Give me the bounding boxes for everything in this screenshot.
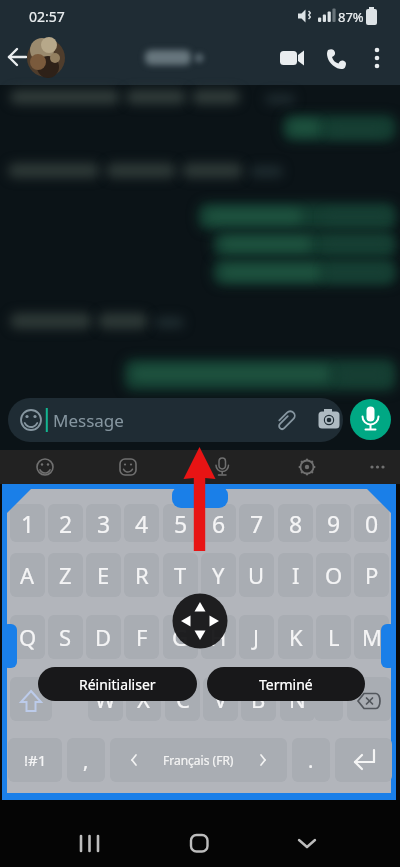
staticText: J [253, 622, 260, 652]
staticText: S [59, 622, 72, 652]
button[interactable]: I [278, 553, 313, 597]
staticText: D [95, 622, 112, 652]
staticText: . [308, 747, 314, 774]
staticText: W [95, 684, 116, 714]
button[interactable]: Q [10, 615, 45, 659]
button[interactable]: K [278, 615, 313, 659]
staticText: G [172, 622, 189, 652]
button[interactable]: 4 [124, 504, 159, 542]
button[interactable]: P [354, 553, 389, 597]
button[interactable]: X [126, 677, 161, 721]
button[interactable] [335, 738, 392, 782]
staticText: , [83, 747, 89, 774]
button[interactable]: S [48, 615, 83, 659]
staticText: 02:57 [29, 7, 65, 26]
staticText: 0 [365, 508, 379, 539]
staticText: R [135, 560, 149, 590]
staticText: 5 [174, 508, 188, 539]
staticText: H [210, 622, 227, 652]
button[interactable] [350, 399, 391, 440]
button[interactable]: R [124, 553, 159, 597]
staticText: 3 [97, 508, 111, 539]
staticText: E [97, 560, 110, 590]
button[interactable] [10, 677, 52, 721]
button[interactable]: Y [201, 553, 236, 597]
staticText: Terminé [259, 675, 313, 694]
button[interactable]: 6 [201, 504, 236, 542]
button[interactable]: M [354, 615, 389, 659]
button[interactable]: 5 [163, 504, 198, 542]
staticText: X [137, 684, 150, 714]
staticText: B [251, 684, 266, 714]
button[interactable] [314, 677, 343, 721]
button[interactable] [0, 800, 134, 867]
button[interactable]: F [124, 615, 159, 659]
button[interactable]: A [10, 553, 45, 597]
staticText: F [136, 622, 148, 652]
button[interactable]: 7 [239, 504, 274, 542]
staticText: 2 [59, 508, 73, 539]
button[interactable]: 2 [48, 504, 83, 542]
staticText: P [365, 560, 379, 590]
button[interactable]: U [239, 553, 274, 597]
button[interactable]: 0 [354, 504, 389, 542]
button[interactable]: H [201, 615, 236, 659]
button[interactable] [347, 677, 391, 721]
button[interactable] [110, 738, 287, 782]
button[interactable]: 8 [278, 504, 313, 542]
button[interactable]: D [86, 615, 121, 659]
button[interactable] [134, 800, 267, 867]
button[interactable] [240, 450, 320, 484]
button[interactable]: V [203, 677, 238, 721]
staticText: O [325, 560, 343, 590]
button[interactable] [160, 450, 240, 484]
button[interactable]: B [241, 677, 276, 721]
staticText: Français (FR) [163, 752, 234, 768]
staticText: N [289, 684, 306, 714]
staticText: I [292, 560, 300, 590]
button[interactable]: , [67, 738, 105, 782]
button[interactable]: Message [8, 398, 343, 442]
staticText: Réinitialiser [79, 675, 156, 694]
staticText: Message [53, 409, 124, 432]
button[interactable] [0, 450, 80, 484]
staticText: 7 [250, 508, 264, 539]
button[interactable] [0, 30, 400, 85]
staticText: Q [19, 622, 37, 652]
button[interactable] [80, 450, 160, 484]
button[interactable]: !#1 [8, 738, 62, 782]
button[interactable]: 1 [10, 504, 45, 542]
button[interactable]: Z [48, 553, 83, 597]
staticText: T [174, 560, 187, 590]
staticText: 6 [212, 508, 226, 539]
staticText: M [362, 622, 382, 652]
button[interactable]: C [165, 677, 200, 721]
staticText: L [328, 622, 340, 652]
button[interactable]: E [86, 553, 121, 597]
button[interactable]: Terminé [207, 667, 365, 701]
staticText: Z [59, 560, 72, 590]
button[interactable]: W [88, 677, 123, 721]
button[interactable]: J [239, 615, 274, 659]
staticText: 87% [338, 8, 364, 26]
button[interactable]: Réinitialiser [38, 667, 197, 701]
button[interactable]: T [163, 553, 198, 597]
button[interactable]: . [292, 738, 330, 782]
button[interactable] [267, 800, 400, 867]
staticText: 8 [289, 508, 303, 539]
staticText: U [248, 560, 265, 590]
staticText: 1 [21, 508, 35, 539]
button[interactable] [320, 450, 400, 484]
button[interactable]: N [280, 677, 315, 721]
staticText: V [214, 684, 228, 714]
staticText: Y [212, 560, 225, 590]
button[interactable]: O [316, 553, 351, 597]
button[interactable]: L [316, 615, 351, 659]
button[interactable]: 9 [316, 504, 351, 542]
staticText: K [289, 622, 303, 652]
staticText: C [176, 684, 190, 714]
button[interactable]: 3 [86, 504, 121, 542]
button[interactable]: G [163, 615, 198, 659]
staticText: A [20, 560, 35, 590]
staticText: !#1 [24, 750, 47, 770]
